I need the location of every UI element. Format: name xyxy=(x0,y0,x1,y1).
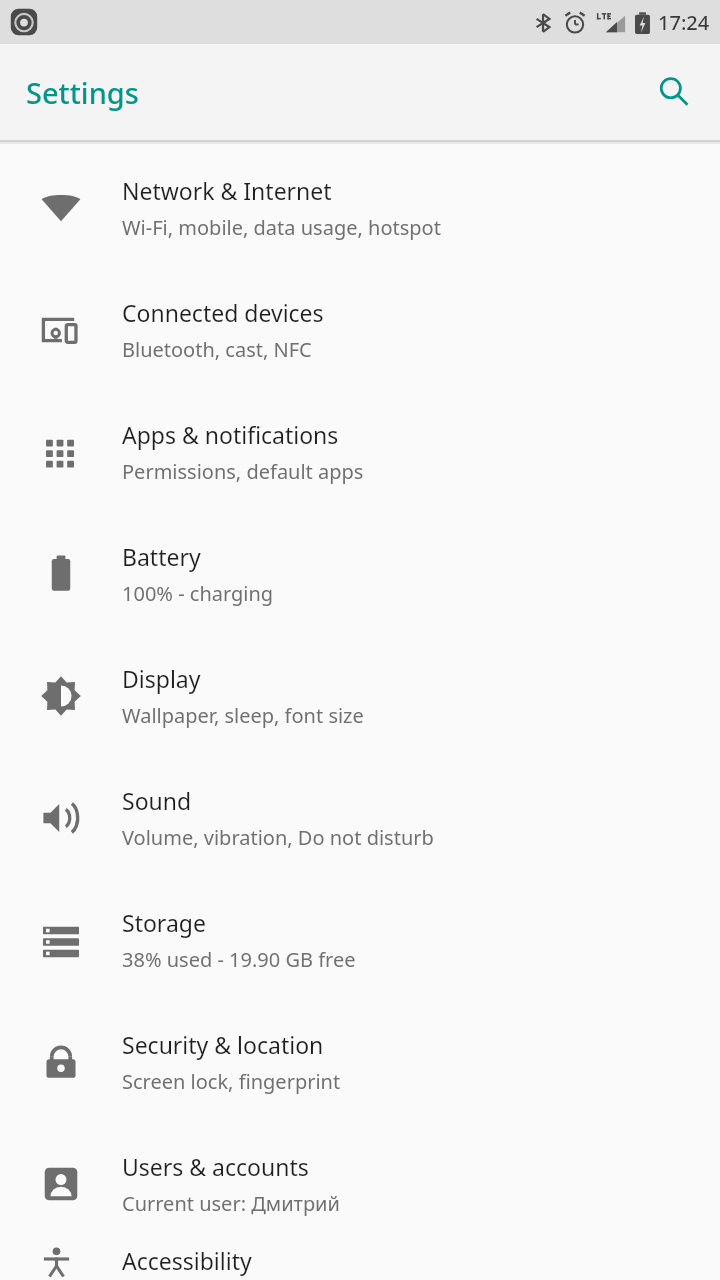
staticText: Wi-Fi, mobile, data usage, hotspot xyxy=(122,214,441,241)
staticText: Screen lock, fingerprint xyxy=(122,1068,341,1095)
staticText: Security & location xyxy=(122,1029,324,1060)
staticText: Connected devices xyxy=(122,297,324,328)
staticText: Permissions, default apps xyxy=(122,458,364,485)
button[interactable]: Display xyxy=(0,635,720,757)
staticText: Settings xyxy=(26,73,139,112)
staticText: 38% used - 19.90 GB free xyxy=(122,946,356,973)
staticText: 17:24 xyxy=(658,9,710,36)
button[interactable]: Search xyxy=(646,64,702,120)
button[interactable]: Users & accounts xyxy=(0,1123,720,1245)
button[interactable]: Network & Internet xyxy=(0,147,720,269)
staticText: Bluetooth, cast, NFC xyxy=(122,336,312,363)
button[interactable]: Security & location xyxy=(0,1001,720,1123)
button[interactable]: Apps & notifications xyxy=(0,391,720,513)
staticText: Users & accounts xyxy=(122,1151,309,1182)
button[interactable]: Storage xyxy=(0,879,720,1001)
staticText: Accessibility xyxy=(122,1245,252,1276)
staticText: 100% - charging xyxy=(122,580,274,607)
staticText: Current user: Дмитрий xyxy=(122,1190,340,1217)
staticText: Storage xyxy=(122,907,206,938)
staticText: Sound xyxy=(122,785,192,816)
staticText: Apps & notifications xyxy=(122,419,339,450)
button[interactable]: Sound xyxy=(0,757,720,879)
button[interactable]: Connected devices xyxy=(0,269,720,391)
button[interactable]: Battery xyxy=(0,513,720,635)
staticText: Battery xyxy=(122,541,201,572)
staticText: Network & Internet xyxy=(122,175,332,206)
button[interactable]: Accessibility xyxy=(0,1245,720,1280)
staticText: Wallpaper, sleep, font size xyxy=(122,702,364,729)
staticText: Display xyxy=(122,663,201,694)
staticText: Volume, vibration, Do not disturb xyxy=(122,824,434,851)
